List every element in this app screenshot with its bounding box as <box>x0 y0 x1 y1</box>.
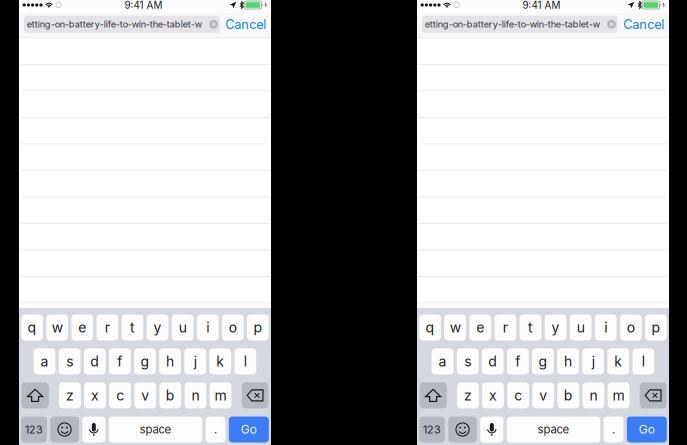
button[interactable]: k <box>209 348 231 374</box>
button[interactable]: a <box>432 348 453 374</box>
staticText: . <box>214 423 217 436</box>
button[interactable]: c <box>507 382 529 408</box>
button[interactable]: j <box>582 348 604 374</box>
button[interactable]: space <box>507 416 600 442</box>
button[interactable]: Cancel <box>224 16 268 32</box>
button[interactable]: Go <box>229 416 269 442</box>
staticText: 123 <box>423 423 441 436</box>
button[interactable]: Delete <box>640 382 666 408</box>
staticText: r <box>503 319 508 336</box>
button[interactable]: l <box>234 348 256 374</box>
button[interactable]: Go <box>627 416 667 442</box>
staticText: f <box>515 353 520 370</box>
staticText: v <box>539 387 547 404</box>
button[interactable]: n <box>583 382 604 408</box>
staticText: 123 <box>25 423 43 436</box>
staticText: o <box>229 319 237 336</box>
button[interactable]: t <box>520 314 541 340</box>
button[interactable]: x <box>482 382 504 408</box>
button[interactable]: z <box>59 382 81 408</box>
staticText: k <box>216 353 224 370</box>
staticText: j <box>592 353 595 370</box>
staticText: o <box>627 319 635 336</box>
button[interactable]: r <box>494 314 516 340</box>
button[interactable]: l <box>632 348 654 374</box>
button[interactable]: . <box>206 416 225 442</box>
button[interactable]: j <box>184 348 206 374</box>
button[interactable]: f <box>109 348 131 374</box>
button[interactable]: Dictation <box>480 416 503 442</box>
staticText: y <box>154 319 162 336</box>
staticText: k <box>614 353 622 370</box>
button[interactable]: e <box>71 314 93 340</box>
staticText: j <box>194 353 197 370</box>
staticText: n <box>191 387 199 404</box>
staticText: x <box>91 387 99 404</box>
button[interactable]: b <box>557 382 579 408</box>
button[interactable]: r <box>96 314 118 340</box>
staticText: x <box>489 387 497 404</box>
staticText: c <box>116 387 124 404</box>
button[interactable]: Emoji <box>50 416 79 442</box>
button[interactable]: q <box>419 314 441 340</box>
button[interactable]: m <box>210 382 231 408</box>
button[interactable]: g <box>134 348 156 374</box>
staticText: w <box>52 319 63 336</box>
button[interactable]: q <box>21 314 43 340</box>
button[interactable]: h <box>159 348 181 374</box>
button[interactable]: v <box>532 382 554 408</box>
button[interactable]: z <box>457 382 479 408</box>
staticText: z <box>66 387 74 404</box>
button[interactable]: space <box>109 416 202 442</box>
button[interactable]: p <box>247 314 269 340</box>
button[interactable]: Dictation <box>82 416 105 442</box>
staticText: . <box>612 423 615 436</box>
button[interactable]: d <box>482 348 504 374</box>
button[interactable]: Cancel <box>622 16 666 32</box>
button[interactable]: 123 <box>21 416 47 442</box>
button[interactable]: e <box>469 314 491 340</box>
button[interactable]: y <box>147 314 168 340</box>
button[interactable]: y <box>545 314 566 340</box>
staticText: u <box>577 319 585 336</box>
button[interactable]: v <box>134 382 156 408</box>
button[interactable]: etting-on-battery-life-to-win-the-tablet… <box>24 16 220 33</box>
button[interactable]: p <box>645 314 667 340</box>
button[interactable]: Emoji <box>448 416 477 442</box>
button[interactable]: n <box>185 382 206 408</box>
staticText: Cancel <box>623 17 664 32</box>
staticText: n <box>589 387 597 404</box>
staticText: s <box>464 353 471 370</box>
staticText: 9:41 AM <box>124 0 162 11</box>
button[interactable]: s <box>457 348 478 374</box>
button[interactable]: w <box>46 314 68 340</box>
button[interactable]: i <box>595 314 617 340</box>
button[interactable]: g <box>532 348 554 374</box>
button[interactable]: Delete <box>242 382 268 408</box>
staticText: etting-on-battery-life-to-win-the-tablet… <box>27 19 202 30</box>
button[interactable]: Shift <box>419 382 447 408</box>
button[interactable]: w <box>444 314 466 340</box>
button[interactable]: b <box>159 382 181 408</box>
button[interactable]: . <box>604 416 623 442</box>
button[interactable]: o <box>620 314 642 340</box>
button[interactable]: a <box>34 348 55 374</box>
button[interactable]: k <box>607 348 629 374</box>
button[interactable]: etting-on-battery-life-to-win-the-tablet… <box>422 16 618 33</box>
button[interactable]: s <box>59 348 80 374</box>
button[interactable]: x <box>84 382 106 408</box>
button[interactable]: f <box>507 348 529 374</box>
button[interactable]: Shift <box>21 382 49 408</box>
staticText: i <box>206 319 209 336</box>
staticText: t <box>528 319 533 336</box>
button[interactable]: h <box>557 348 579 374</box>
button[interactable]: i <box>197 314 219 340</box>
button[interactable]: t <box>122 314 143 340</box>
button[interactable]: m <box>608 382 629 408</box>
button[interactable]: o <box>222 314 244 340</box>
button[interactable]: c <box>109 382 131 408</box>
button[interactable]: d <box>84 348 106 374</box>
button[interactable]: u <box>172 314 193 340</box>
button[interactable]: u <box>570 314 591 340</box>
button[interactable]: 123 <box>419 416 445 442</box>
